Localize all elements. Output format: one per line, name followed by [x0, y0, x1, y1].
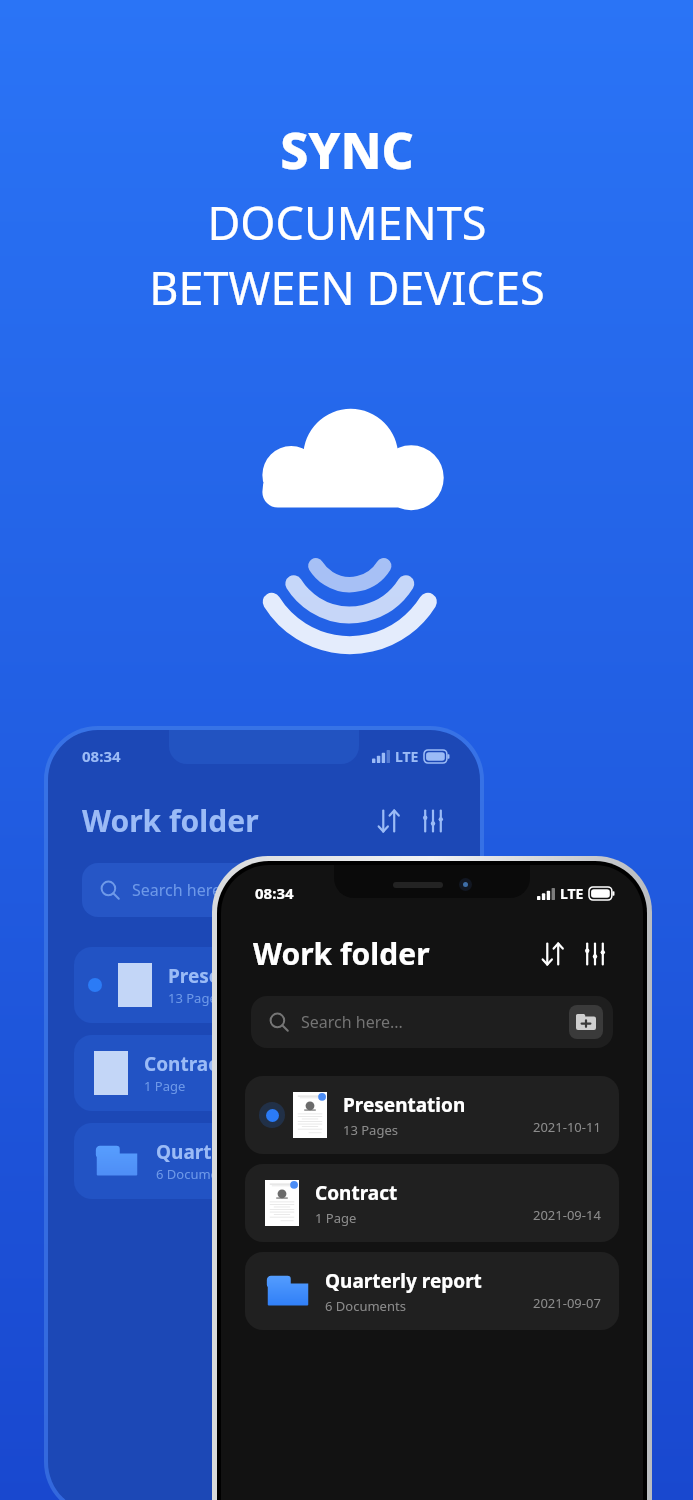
button[interactable]: New folder — [569, 1005, 603, 1039]
staticText: LTE — [395, 747, 419, 766]
staticText: Presentation — [168, 963, 291, 989]
staticText: Work folder — [253, 933, 430, 974]
button[interactable]: Presentation — [74, 947, 454, 1023]
staticText: 6 Documents — [325, 1297, 406, 1315]
button[interactable]: Presentation — [245, 1076, 619, 1154]
staticText: Search here... — [301, 1011, 403, 1033]
staticText: 2021-09-07 — [533, 1294, 601, 1312]
staticText: 08:34 — [82, 746, 121, 766]
staticText: 13 Pages — [343, 1121, 398, 1139]
staticText: Quarterly report — [325, 1268, 482, 1294]
staticText: Quarterly report — [156, 1139, 313, 1165]
button[interactable]: Quarterly report — [245, 1252, 619, 1330]
button[interactable]: Filter — [579, 938, 611, 970]
staticText: Work folder — [82, 800, 259, 841]
staticText: 6 Documents — [156, 1165, 237, 1183]
staticText: 1 Page — [315, 1209, 357, 1227]
staticText: Search here... — [132, 879, 234, 901]
staticText: 1 Page — [144, 1077, 186, 1095]
staticText: Presentation — [343, 1092, 466, 1118]
staticText: 13 Pages — [168, 989, 223, 1007]
button[interactable]: Contract — [74, 1035, 454, 1111]
staticText: DOCUMENTS — [207, 192, 487, 253]
staticText: 08:34 — [255, 883, 294, 903]
button[interactable]: Contract — [245, 1164, 619, 1242]
button[interactable]: Search here... — [251, 996, 613, 1048]
button[interactable]: Quarterly report — [74, 1123, 454, 1199]
staticText: LTE — [560, 884, 584, 903]
staticText: Contract — [315, 1180, 398, 1206]
staticText: Contract — [144, 1051, 227, 1077]
button[interactable]: Sort — [537, 938, 569, 970]
staticText: 2021-10-11 — [533, 1118, 601, 1136]
staticText: SYNC — [280, 116, 414, 184]
staticText: 2021-09-14 — [533, 1206, 601, 1224]
staticText: BETWEEN DEVICES — [149, 257, 545, 318]
